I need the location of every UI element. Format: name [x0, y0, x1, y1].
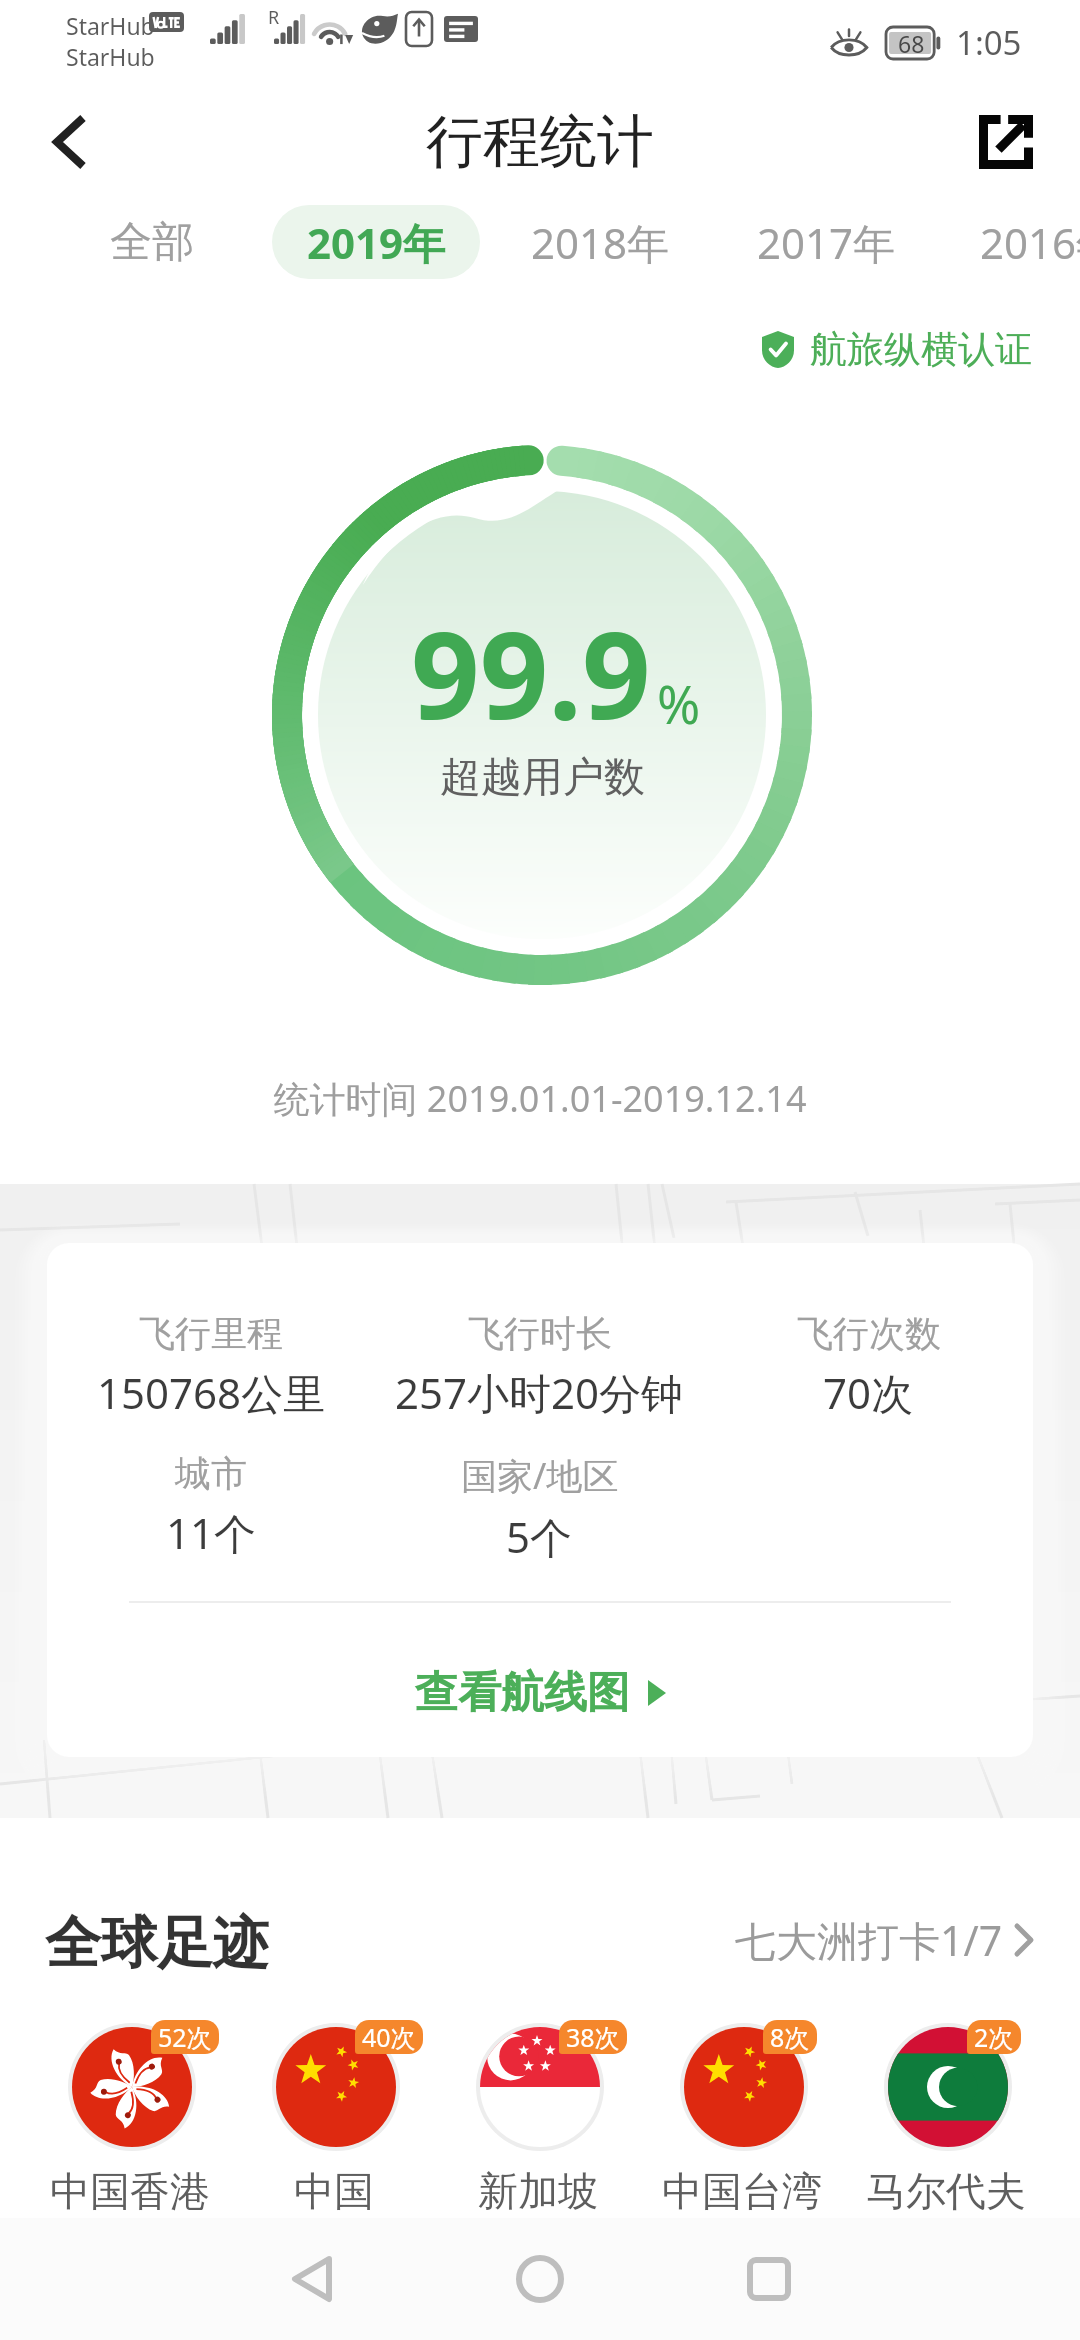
- staticText: 257小时20分钟: [395, 1364, 684, 1421]
- button[interactable]: 查看航线图: [47, 1629, 1033, 1757]
- staticText: 2017年: [757, 214, 896, 271]
- staticText: 150768公里: [97, 1364, 326, 1421]
- staticText: 52次: [158, 2020, 212, 2054]
- staticText: 全球足迹: [45, 1908, 269, 1979]
- staticText: 查看航线图: [415, 1666, 630, 1720]
- button[interactable]: Recents: [709, 2219, 829, 2339]
- button[interactable]: Home: [480, 2219, 600, 2339]
- staticText: 2次: [974, 2020, 1014, 2054]
- staticText: 行程统计: [426, 106, 654, 178]
- button[interactable]: 航旅纵横认证: [762, 326, 1032, 373]
- staticText: StarHub: [66, 41, 155, 72]
- staticText: 中国: [294, 2166, 374, 2216]
- staticText: 中国台湾: [662, 2166, 822, 2216]
- button[interactable]: 38次: [429, 2008, 649, 2220]
- staticText: 飞行次数: [797, 1311, 941, 1356]
- staticText: 超越用户数: [440, 752, 645, 804]
- staticText: 新加坡: [478, 2166, 598, 2216]
- button[interactable]: 8次: [633, 2008, 853, 2220]
- staticText: 99.9: [411, 591, 651, 754]
- button[interactable]: 七大洲打卡1/7: [735, 1912, 1033, 1968]
- staticText: 40次: [362, 2020, 416, 2054]
- staticText: 2016年: [980, 214, 1080, 271]
- staticText: 航旅纵横认证: [810, 326, 1032, 373]
- staticText: 38次: [566, 2020, 620, 2054]
- button[interactable]: Share: [962, 98, 1050, 186]
- button[interactable]: 2019年: [272, 205, 480, 279]
- staticText: 5个: [506, 1508, 573, 1565]
- staticText: %: [657, 668, 701, 739]
- staticText: 统计时间 2019.01.01-2019.12.14: [0, 1074, 1080, 1123]
- button[interactable]: 2016年: [980, 194, 1080, 290]
- staticText: 中国香港: [50, 2166, 210, 2216]
- staticText: 11个: [166, 1504, 257, 1561]
- button[interactable]: 2018年: [516, 194, 684, 290]
- button[interactable]: Back: [26, 98, 114, 186]
- staticText: 全部: [110, 216, 194, 269]
- staticText: 国家/地区: [461, 1451, 619, 1500]
- staticText: R: [268, 5, 280, 30]
- staticText: 2019年: [307, 214, 446, 271]
- staticText: 1:05: [956, 20, 1022, 65]
- staticText: 2018年: [531, 214, 670, 271]
- button[interactable]: Back: [252, 2219, 372, 2339]
- staticText: 8次: [770, 2020, 810, 2054]
- staticText: 城市: [175, 1451, 247, 1496]
- staticText: StarHub: [66, 10, 155, 41]
- staticText: 70次: [823, 1364, 914, 1421]
- staticText: 七大洲打卡1/7: [735, 1912, 1003, 1968]
- button[interactable]: 52次: [21, 2008, 241, 2220]
- staticText: 飞行时长: [468, 1311, 612, 1356]
- staticText: 飞行里程: [139, 1311, 283, 1356]
- staticText: 马尔代夫: [866, 2166, 1026, 2216]
- button[interactable]: 40次: [225, 2008, 445, 2220]
- button[interactable]: 全部: [92, 194, 212, 290]
- button[interactable]: 2次: [837, 2008, 1057, 2220]
- button[interactable]: 2017年: [742, 194, 910, 290]
- staticText: 68: [898, 28, 925, 59]
